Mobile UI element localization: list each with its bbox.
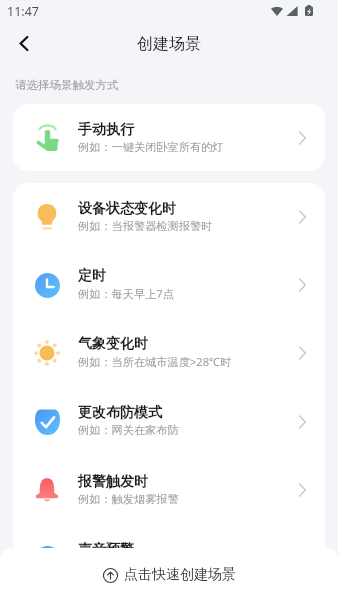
staticText: 例如：当所在城市温度>28℃时 bbox=[78, 354, 232, 369]
staticText: 例如：网关在家布防 bbox=[78, 423, 179, 437]
staticText: 定时 bbox=[78, 267, 106, 285]
button[interactable]: 更改布防模式 bbox=[13, 387, 325, 456]
button[interactable]: 定时 bbox=[13, 251, 325, 319]
button[interactable]: Back bbox=[5, 25, 43, 63]
button[interactable]: 点击快速创建场景 bbox=[0, 548, 338, 601]
button[interactable]: 气象变化时 bbox=[13, 319, 325, 387]
staticText: 创建场景 bbox=[137, 34, 201, 54]
staticText: 例如：每天早上7点 bbox=[78, 286, 174, 301]
staticText: 气象变化时 bbox=[78, 335, 148, 353]
staticText: 报警触发时 bbox=[78, 473, 148, 491]
staticText: 例如：一键关闭卧室所有的灯 bbox=[78, 140, 224, 154]
staticText: 例如：设备声音报警 bbox=[78, 560, 179, 574]
staticText: 请选择场景触发方式 bbox=[15, 78, 119, 92]
staticText: 点击快速创建场景 bbox=[124, 566, 236, 584]
staticText: 11:47 bbox=[7, 3, 39, 20]
staticText: 设备状态变化时 bbox=[78, 200, 176, 218]
button[interactable]: 报警触发时 bbox=[13, 456, 325, 524]
staticText: 手动执行 bbox=[78, 121, 134, 139]
button[interactable]: 声音预警 bbox=[13, 524, 325, 592]
staticText: 声音预警 bbox=[78, 541, 134, 559]
button[interactable]: 手动执行 bbox=[13, 104, 325, 171]
staticText: 例如：当报警器检测报警时 bbox=[78, 219, 213, 233]
staticText: 例如：触发烟雾报警 bbox=[78, 492, 179, 506]
button[interactable]: 设备状态变化时 bbox=[13, 183, 325, 251]
staticText: 更改布防模式 bbox=[78, 404, 162, 422]
